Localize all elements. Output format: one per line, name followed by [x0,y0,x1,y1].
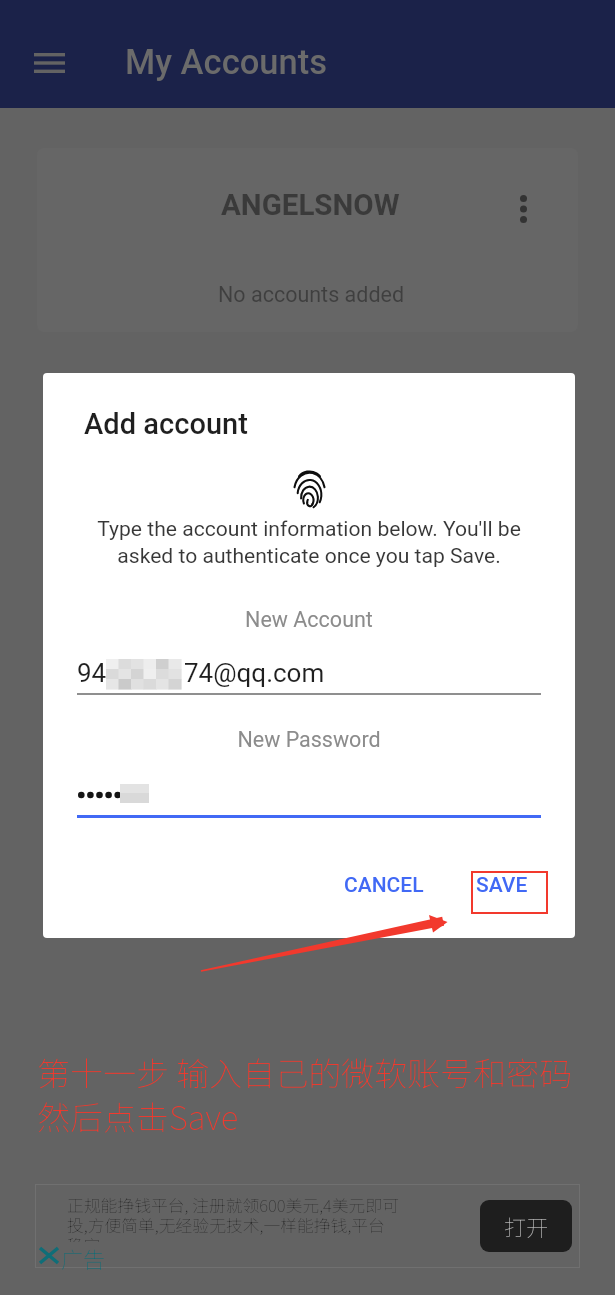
staticText: 打开 [504,1210,549,1242]
staticText: ANGELSNOW [221,188,400,223]
staticText: 广告 [61,1242,106,1274]
staticText: New Password [43,727,575,752]
staticText: My Accounts [125,42,328,82]
staticText: 正规能挣钱平台, 注册就领600美元,4美元即可 投,方便简单,无经验无技术,一… [67,1193,400,1242]
button[interactable]: 正规能挣钱平台, 注册就领600美元,4美元即可 投,方便简单,无经验无技术,一… [35,1184,580,1268]
button[interactable] [77,773,541,818]
staticText: New Account [43,607,575,632]
staticText: No accounts added [218,282,405,307]
button[interactable]: More options [504,190,542,228]
staticText: Type the account information below. You'… [43,516,575,568]
button[interactable]: 94 [77,658,541,695]
button[interactable]: ANGELSNOW [37,148,578,332]
staticText: SAVE [476,873,528,898]
staticText: 94 [77,658,107,688]
button[interactable]: 打开 [480,1200,572,1252]
staticText: 然后点击Save [37,1092,239,1140]
staticText: 第十一步 输入自己的微软账号和密码 [37,1048,573,1096]
staticText: CANCEL [344,873,424,898]
button[interactable]: Menu [26,43,72,82]
button[interactable]: SAVE [464,863,540,908]
staticText: Add account [84,407,248,441]
button[interactable]: CANCEL [332,863,436,908]
staticText: 74@qq.com [184,658,325,688]
